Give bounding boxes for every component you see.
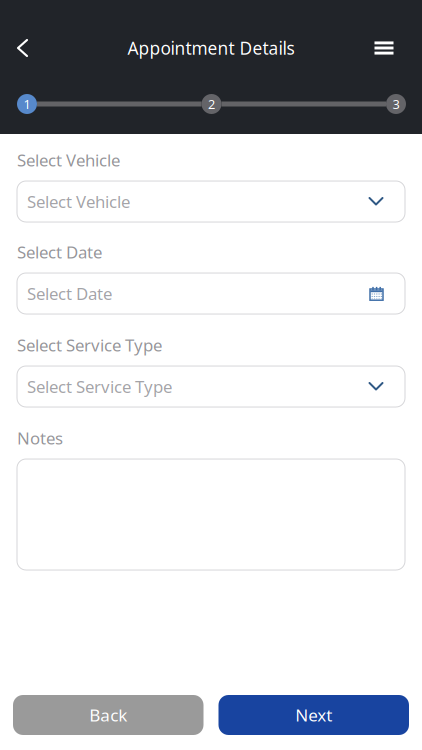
staticText: Select Vehicle <box>17 149 120 171</box>
staticText: Select Service Type <box>17 334 162 356</box>
staticText: Appointment Details <box>127 36 294 60</box>
button[interactable]: Back <box>13 695 203 735</box>
button[interactable]: Select Date <box>17 273 405 314</box>
staticText: Select Service Type <box>27 375 172 398</box>
button[interactable]: Back <box>1 26 45 70</box>
button[interactable]: Select Vehicle <box>17 181 405 222</box>
button[interactable]: Menu <box>362 26 406 70</box>
staticText: 3 <box>392 95 399 113</box>
staticText: Select Date <box>27 282 112 305</box>
staticText: Next <box>295 703 332 727</box>
staticText: Back <box>89 703 127 727</box>
staticText: Select Vehicle <box>27 190 130 213</box>
button[interactable]: Select Service Type <box>17 366 405 407</box>
staticText: Select Date <box>17 241 102 263</box>
button[interactable]: Next <box>218 695 409 735</box>
staticText: Notes <box>17 427 63 449</box>
button[interactable]: Notes <box>17 459 405 570</box>
staticText: 2 <box>208 95 215 113</box>
staticText: 1 <box>23 95 30 113</box>
